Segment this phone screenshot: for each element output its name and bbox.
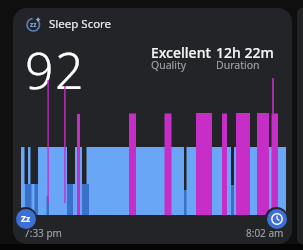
- button[interactable]: Zz: [16, 209, 36, 229]
- staticText: Duration: [216, 58, 260, 72]
- staticText: 12h 22m: [216, 43, 274, 62]
- staticText: Excellent: [151, 43, 211, 62]
- staticText: 92: [25, 36, 86, 104]
- staticText: Quality: [151, 58, 187, 72]
- button[interactable]: [267, 209, 287, 229]
- staticText: 8:02 am: [246, 226, 284, 240]
- staticText: Sleep Score: [49, 16, 112, 32]
- staticText: 7:33 pm: [24, 226, 62, 240]
- staticText: zz: [30, 20, 37, 29]
- button[interactable]: zz: [13, 8, 292, 244]
- staticText: Zz: [21, 213, 31, 225]
